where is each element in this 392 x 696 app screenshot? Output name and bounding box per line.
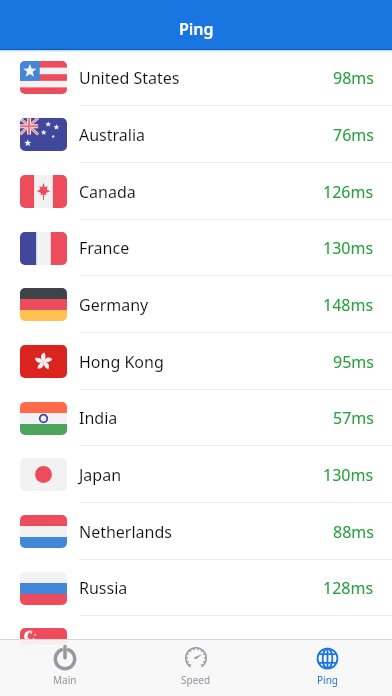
staticText: 130ms bbox=[323, 464, 374, 486]
staticText: Main bbox=[53, 673, 77, 687]
staticText: France bbox=[79, 237, 130, 259]
button[interactable] bbox=[0, 616, 392, 673]
staticText: 126ms bbox=[323, 181, 374, 203]
staticText: Australia bbox=[79, 124, 146, 146]
other: Speed bbox=[184, 646, 208, 670]
staticText: 57ms bbox=[333, 407, 374, 429]
staticText: Japan bbox=[79, 464, 122, 486]
staticText: Ping bbox=[179, 18, 214, 40]
staticText: United States bbox=[79, 67, 180, 89]
staticText: Hong Kong bbox=[79, 351, 164, 373]
staticText: Russia bbox=[79, 577, 128, 599]
staticText: 76ms bbox=[333, 124, 374, 146]
staticText: Canada bbox=[79, 181, 136, 203]
staticText: India bbox=[79, 407, 118, 429]
button[interactable]: Australia bbox=[0, 106, 392, 163]
staticText: 128ms bbox=[323, 577, 374, 599]
button[interactable]: Canada bbox=[0, 163, 392, 220]
staticText: 148ms bbox=[323, 294, 374, 316]
button[interactable]: Speed bbox=[130, 640, 261, 696]
staticText: 98ms bbox=[333, 67, 374, 89]
staticText: Netherlands bbox=[79, 521, 172, 543]
staticText: Speed bbox=[181, 673, 211, 687]
button[interactable]: Russia bbox=[0, 560, 392, 616]
staticText: Germany bbox=[79, 294, 149, 316]
other: Ping bbox=[316, 647, 339, 670]
button[interactable]: Netherlands bbox=[0, 503, 392, 560]
staticText: Ping bbox=[317, 673, 338, 687]
staticText: 95ms bbox=[333, 351, 374, 373]
staticText: 130ms bbox=[323, 237, 374, 259]
button[interactable]: Japan bbox=[0, 446, 392, 503]
button[interactable]: Hong Kong bbox=[0, 333, 392, 390]
button[interactable]: Main bbox=[0, 640, 130, 696]
button[interactable]: Germany bbox=[0, 276, 392, 333]
other: Main bbox=[52, 645, 78, 671]
staticText: 88ms bbox=[333, 521, 374, 543]
button[interactable]: Ping bbox=[261, 640, 392, 696]
button[interactable]: United States bbox=[0, 49, 392, 106]
button[interactable]: France bbox=[0, 220, 392, 276]
button[interactable]: India bbox=[0, 390, 392, 446]
